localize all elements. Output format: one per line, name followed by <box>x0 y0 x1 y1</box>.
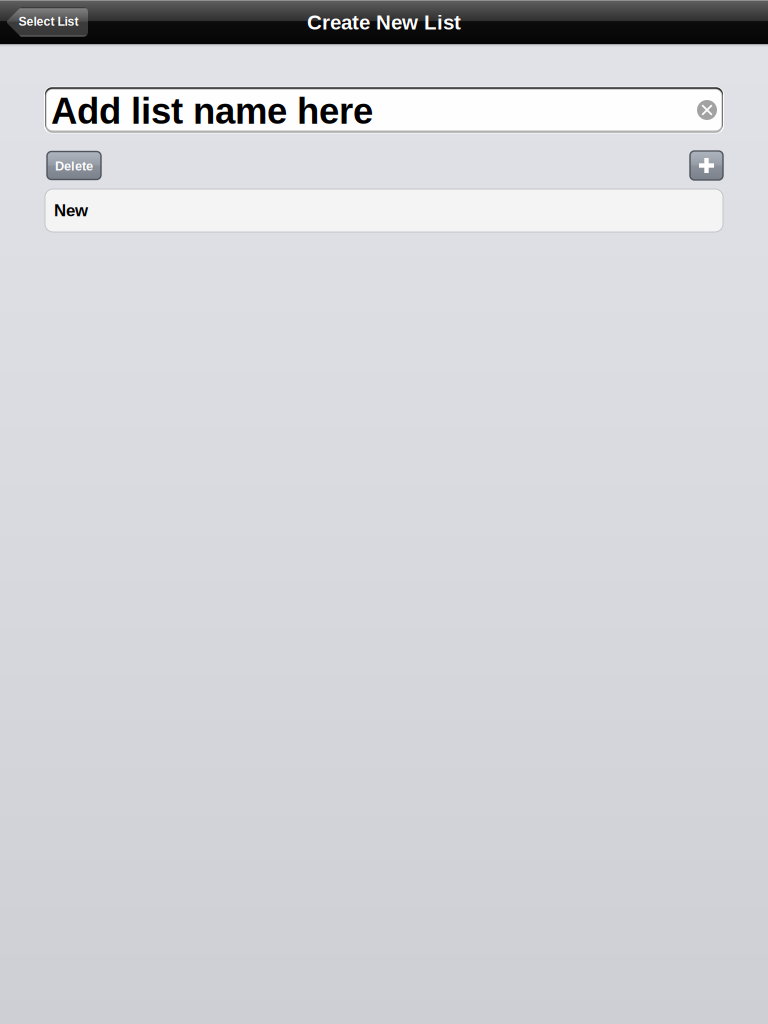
staticText: Delete <box>55 159 93 173</box>
staticText: Create New List <box>307 11 461 34</box>
staticText: New <box>54 201 88 220</box>
button[interactable]: Select List <box>7 7 88 37</box>
button[interactable]: Delete <box>47 151 101 179</box>
button[interactable]: New <box>45 189 723 232</box>
button[interactable]: Add <box>690 151 723 180</box>
staticText: Add list name here <box>51 91 373 131</box>
button[interactable]: Clear text <box>694 97 720 123</box>
staticText: Select List <box>18 15 78 28</box>
